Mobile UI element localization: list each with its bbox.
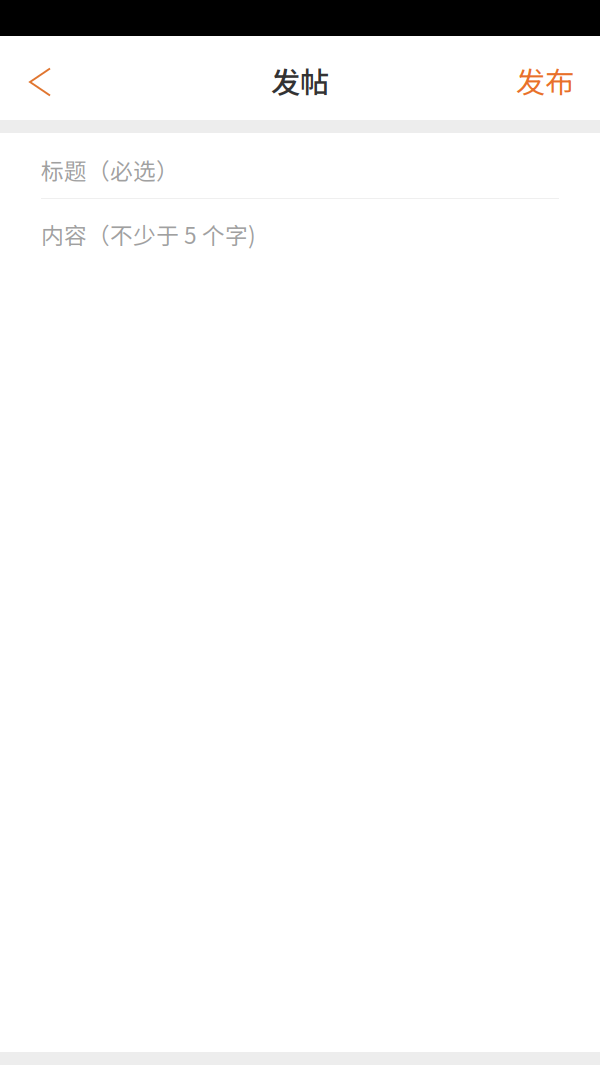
button[interactable]: 内容（不少于 5 个字) <box>41 199 559 269</box>
staticText: 发帖 <box>271 59 329 102</box>
staticText: 内容（不少于 5 个字) <box>41 218 256 250</box>
button[interactable]: Back <box>0 36 90 120</box>
staticText: 标题（必选） <box>41 153 179 186</box>
button[interactable]: 标题（必选） <box>41 133 559 198</box>
staticText: 发布 <box>516 59 574 102</box>
button[interactable]: 发布 <box>490 36 574 120</box>
